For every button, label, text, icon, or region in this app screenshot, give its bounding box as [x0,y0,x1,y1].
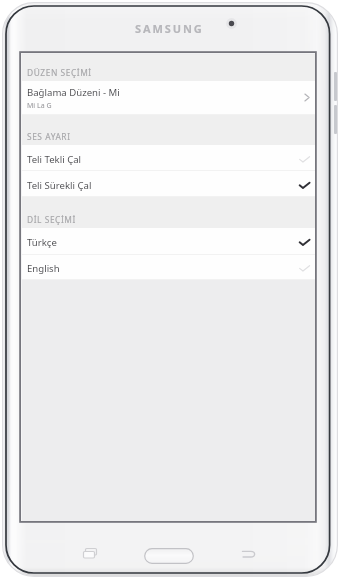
staticText: Teli Tekli Çal [27,153,299,166]
button[interactable]: Teli Sürekli Çal [22,171,315,197]
staticText: Türkçe [27,236,299,249]
staticText: English [27,262,299,275]
staticText: Mi La G [27,101,52,111]
button[interactable]: Home [144,548,194,564]
button[interactable]: Back [238,546,258,561]
button[interactable]: English [22,255,315,280]
staticText: SAMSUNG [135,21,204,36]
staticText: Teli Sürekli Çal [27,179,299,192]
staticText: SES AYARI [27,131,71,142]
staticText: DİL SEÇİMİ [27,214,76,225]
staticText: DÜZEN SEÇİMİ [27,67,92,78]
button[interactable]: Türkçe [22,228,315,255]
button[interactable]: Teli Tekli Çal [22,145,315,171]
staticText: Bağlama Düzeni - Mi [27,86,120,99]
button[interactable]: Bağlama Düzeni - Mi [22,81,315,115]
button[interactable]: Recents [80,546,101,561]
